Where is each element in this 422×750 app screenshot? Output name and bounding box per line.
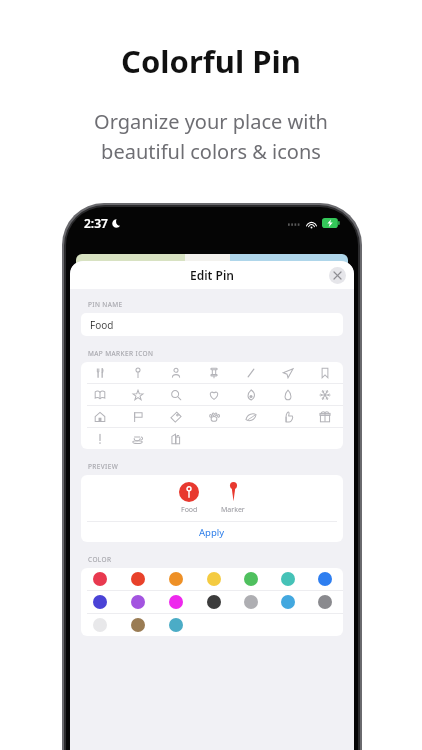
button[interactable]: Color 8	[81, 591, 119, 613]
button[interactable]: Marker icon 19	[232, 406, 269, 427]
button[interactable]: Marker icon 18	[195, 406, 232, 427]
button[interactable]: Marker icon 24	[157, 428, 195, 449]
button[interactable]: Marker icon 22	[81, 428, 119, 449]
button[interactable]: Color 4	[195, 568, 232, 590]
button[interactable]: Color 17	[157, 614, 195, 636]
button[interactable]: Marker icon 15	[81, 406, 119, 427]
button[interactable]: Food	[81, 313, 343, 336]
button[interactable]: Marker icon 13	[269, 384, 306, 405]
button[interactable]: Marker	[221, 482, 245, 515]
button[interactable]: Marker icon 20	[269, 406, 306, 427]
button[interactable]: Marker icon 9	[119, 384, 157, 405]
button[interactable]: Marker icon 4	[195, 362, 232, 383]
button[interactable]: Color 15	[81, 614, 119, 636]
button[interactable]: Marker icon 23	[119, 428, 157, 449]
button[interactable]: Color 16	[119, 614, 157, 636]
button[interactable]: Color 2	[119, 568, 157, 590]
staticText: PREVIEW	[88, 462, 119, 471]
button[interactable]: Marker icon 3	[157, 362, 195, 383]
button[interactable]: Marker icon 6	[269, 362, 306, 383]
button[interactable]: Food	[179, 482, 199, 515]
button[interactable]: Marker icon 1	[81, 362, 119, 383]
staticText: COLOR	[88, 555, 112, 564]
button[interactable]: Color 6	[269, 568, 306, 590]
button[interactable]: Marker icon 11	[195, 384, 232, 405]
button[interactable]: Marker icon 8	[81, 384, 119, 405]
staticText: 2:37	[84, 215, 108, 231]
staticText: Food	[90, 318, 114, 332]
button[interactable]: Color 3	[157, 568, 195, 590]
button[interactable]: Color 7	[306, 568, 343, 590]
staticText: Food	[181, 505, 198, 515]
button[interactable]: Color 13	[269, 591, 306, 613]
button[interactable]: Marker icon 10	[157, 384, 195, 405]
button[interactable]: Marker icon 7	[306, 362, 343, 383]
button[interactable]: Color 14	[306, 591, 343, 613]
staticText: PIN NAME	[88, 300, 123, 309]
staticText: MAP MARKER ICON	[88, 349, 154, 358]
button[interactable]: Marker icon 5	[232, 362, 269, 383]
button[interactable]: Marker icon 12	[232, 384, 269, 405]
button[interactable]: Color 10	[157, 591, 195, 613]
button[interactable]: Color 5	[232, 568, 269, 590]
button[interactable]: Color 1	[81, 568, 119, 590]
button[interactable]: Marker icon 16	[119, 406, 157, 427]
button[interactable]: Close	[329, 267, 346, 284]
staticText: Marker	[221, 505, 245, 515]
staticText: Organize your place with	[94, 108, 328, 135]
button[interactable]: Color 9	[119, 591, 157, 613]
staticText: Apply	[199, 526, 225, 539]
staticText: Edit Pin	[190, 267, 235, 283]
button[interactable]: Color 12	[232, 591, 269, 613]
button[interactable]: Marker icon 14	[306, 384, 343, 405]
staticText: Colorful Pin	[121, 40, 301, 82]
button[interactable]: Apply	[81, 522, 343, 542]
staticText: beautiful colors & icons	[101, 138, 321, 165]
button[interactable]: Color 11	[195, 591, 232, 613]
button[interactable]: Marker icon 21	[306, 406, 343, 427]
button[interactable]: Marker icon 17	[157, 406, 195, 427]
button[interactable]: Marker icon 2	[119, 362, 157, 383]
